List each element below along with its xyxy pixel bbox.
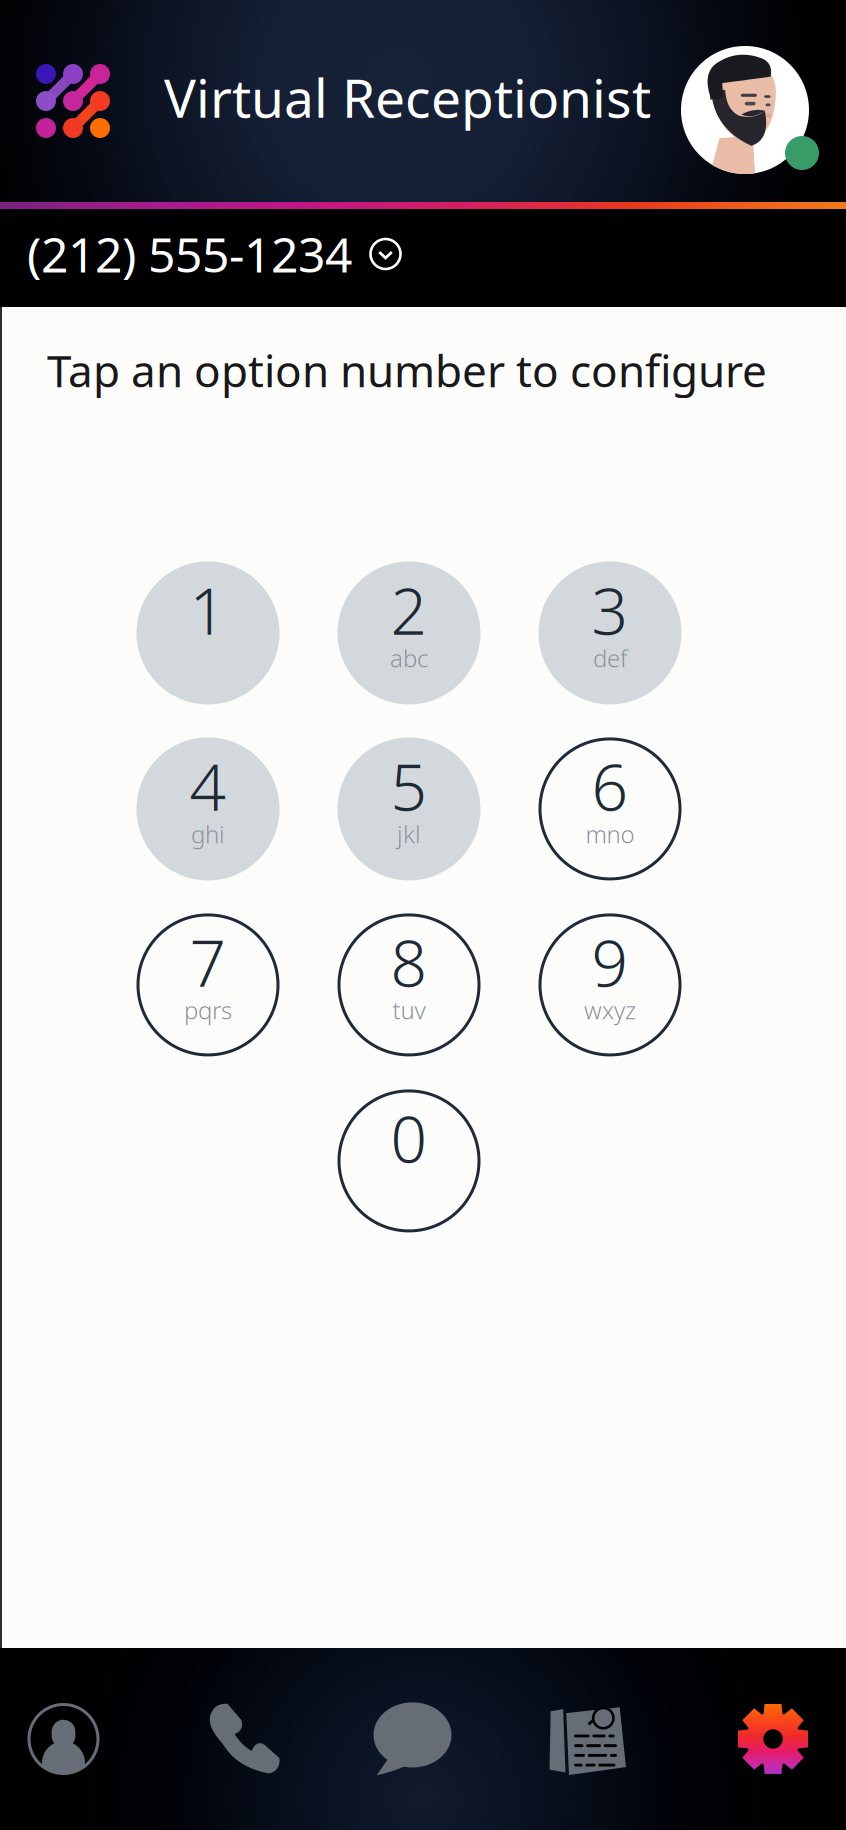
staticText: Virtual Receptionist [164, 62, 651, 132]
staticText: ghi [191, 818, 225, 850]
staticText: abc [390, 642, 428, 674]
button[interactable]: 4 [136, 737, 279, 880]
button[interactable]: 7 [136, 913, 279, 1056]
staticText: 8 [390, 919, 427, 1004]
staticText: tuv [392, 994, 425, 1026]
staticText: 1 [189, 567, 226, 652]
staticText: 3 [591, 567, 628, 652]
staticText: Tap an option number to configure [47, 341, 767, 399]
button[interactable]: 5 [337, 737, 480, 880]
staticText: jkl [397, 818, 421, 850]
staticText: 2 [390, 567, 427, 652]
staticText: 0 [390, 1095, 427, 1180]
button[interactable]: 9 [538, 913, 681, 1056]
button[interactable]: Contacts [0, 1648, 169, 1830]
button[interactable]: 8 [337, 913, 480, 1056]
button[interactable]: Phone [169, 1648, 338, 1830]
staticText: 5 [390, 743, 427, 828]
button[interactable]: 2 [337, 561, 480, 704]
button[interactable]: 3 [538, 561, 681, 704]
staticText: 6 [591, 743, 628, 828]
button[interactable]: 0 [337, 1089, 480, 1232]
staticText: def [593, 642, 627, 674]
staticText: 7 [189, 919, 226, 1004]
button[interactable]: Notes [507, 1648, 676, 1830]
staticText: wxyz [584, 994, 636, 1026]
button[interactable]: Messages [338, 1648, 507, 1830]
staticText: 4 [189, 743, 226, 828]
staticText: mno [585, 818, 634, 850]
button[interactable]: Settings [676, 1648, 846, 1830]
button[interactable]: 1 [136, 561, 279, 704]
staticText: (212) 555-1234 [27, 222, 352, 286]
staticText: 9 [591, 919, 628, 1004]
button[interactable]: 6 [538, 737, 681, 880]
staticText: pqrs [184, 994, 232, 1026]
